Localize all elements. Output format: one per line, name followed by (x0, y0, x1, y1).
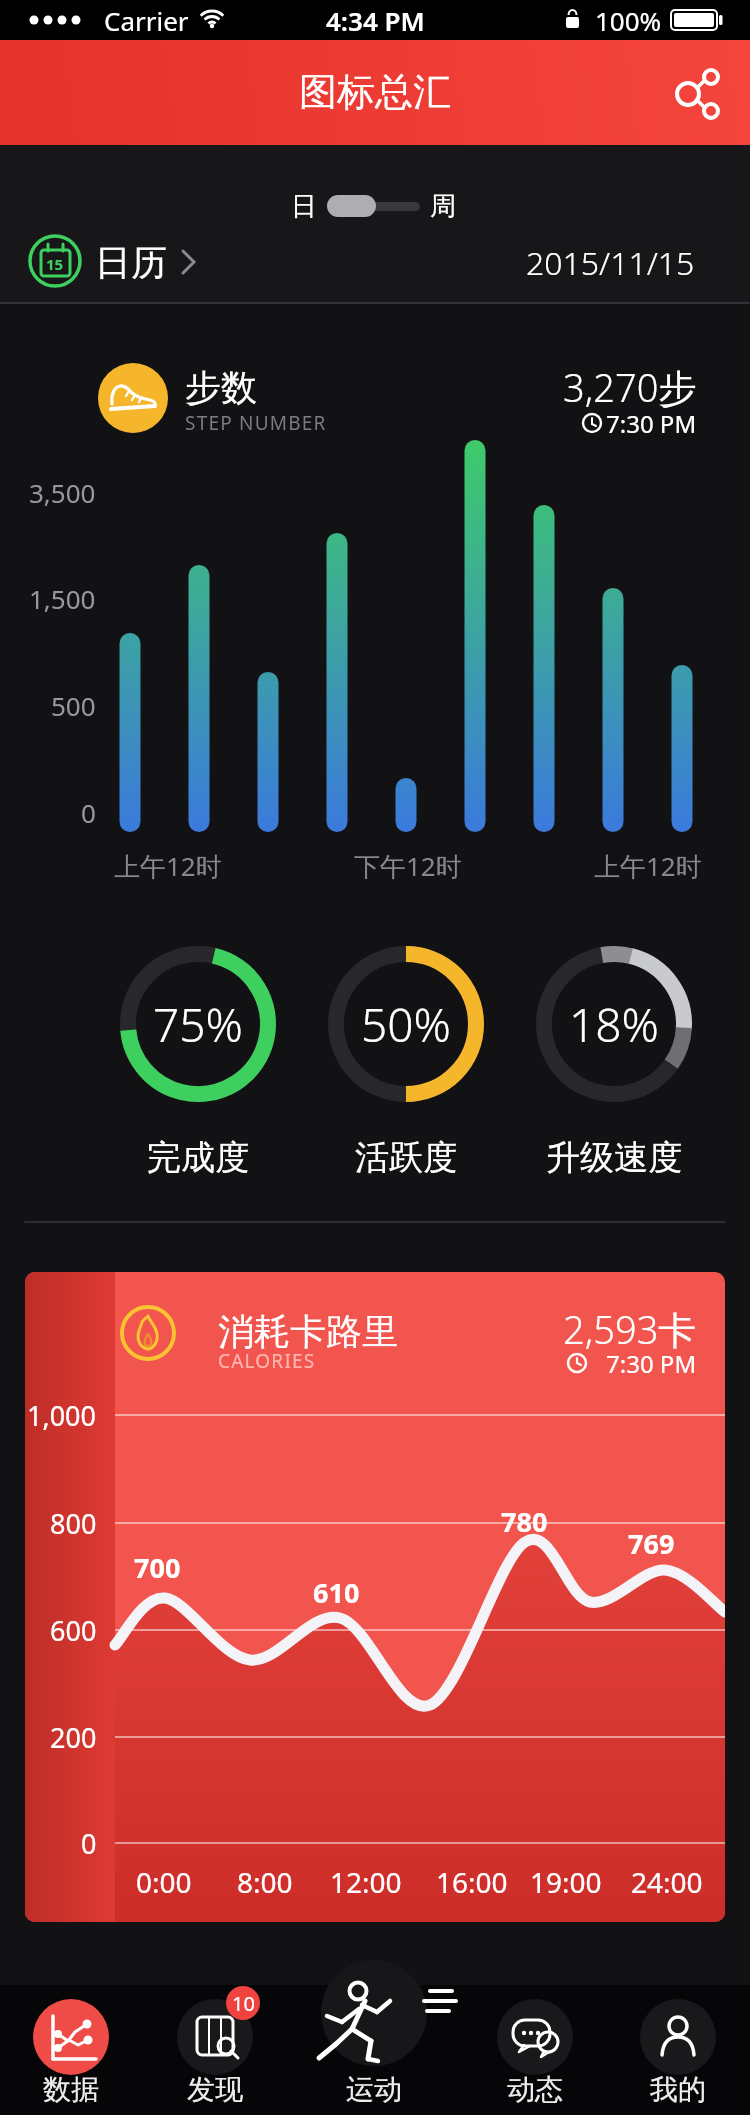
staticText: 消耗卡路里 (218, 1309, 398, 1354)
staticText: 1,500 (29, 581, 96, 616)
staticText: STEP NUMBER (185, 410, 327, 436)
staticText: 图标总汇 (299, 68, 451, 116)
staticText: 3,270步 (563, 361, 697, 413)
staticText: 24:00 (631, 1863, 703, 1901)
staticText: 780 (501, 1503, 548, 1540)
button[interactable] (290, 185, 460, 229)
button[interactable] (25, 232, 195, 290)
staticText: 活跃度 (355, 1136, 457, 1179)
staticText: 动态 (507, 2072, 563, 2107)
staticText: 4:34 PM (326, 3, 425, 38)
staticText: 完成度 (147, 1136, 249, 1179)
staticText: 运动 (346, 2072, 402, 2107)
staticText: 数据 (43, 2072, 99, 2107)
button[interactable] (25, 1272, 725, 1922)
staticText: 2,593卡 (563, 1303, 697, 1355)
staticText: 75% (153, 993, 243, 1056)
staticText: 12:00 (330, 1863, 402, 1901)
button[interactable] (11, 1990, 131, 2110)
staticText: 步数 (185, 365, 257, 410)
staticText: 7:30 PM (606, 1347, 697, 1380)
button[interactable] (618, 1990, 738, 2110)
button[interactable] (510, 240, 700, 286)
staticText: 周 (430, 190, 456, 223)
staticText: 上午12时 (114, 848, 222, 884)
button[interactable] (660, 60, 730, 130)
staticText: 0 (81, 1825, 97, 1862)
staticText: 769 (628, 1525, 675, 1562)
button[interactable] (314, 1960, 434, 2110)
staticText: 700 (134, 1549, 181, 1586)
button[interactable] (475, 1990, 595, 2110)
staticText: 0:00 (136, 1863, 192, 1901)
staticText: 升级速度 (546, 1136, 682, 1179)
staticText: 800 (50, 1505, 97, 1542)
staticText: CALORIES (218, 1348, 316, 1374)
staticText: 16:00 (436, 1863, 508, 1901)
staticText: 7:30 PM (606, 407, 697, 440)
staticText: 上午12时 (594, 848, 702, 884)
staticText: 200 (50, 1719, 97, 1756)
staticText: 8:00 (237, 1863, 293, 1901)
staticText: 日历 (95, 240, 167, 285)
staticText: 18% (569, 993, 659, 1056)
staticText: 19:00 (530, 1863, 602, 1901)
staticText: 15 (46, 254, 64, 274)
staticText: 2015/11/15 (526, 241, 695, 285)
staticText: 610 (313, 1574, 360, 1611)
staticText: 100% (595, 3, 662, 38)
button[interactable] (155, 1990, 275, 2110)
staticText: Carrier (104, 3, 189, 38)
staticText: 我的 (650, 2072, 706, 2107)
staticText: 0 (81, 795, 96, 830)
staticText: 500 (51, 688, 96, 723)
staticText: 50% (361, 993, 451, 1056)
staticText: 10 (232, 1990, 255, 2017)
staticText: 下午12时 (354, 848, 462, 884)
staticText: 日 (291, 190, 317, 223)
staticText: 发现 (187, 2072, 243, 2107)
staticText: 600 (50, 1612, 97, 1649)
staticText: 3,500 (29, 475, 96, 510)
staticText: 1,000 (27, 1397, 97, 1434)
